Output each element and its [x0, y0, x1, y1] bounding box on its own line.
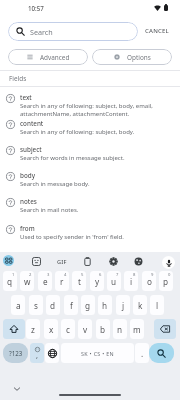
button[interactable]: c [61, 319, 75, 339]
staticText: body [20, 171, 35, 180]
button[interactable]: q [3, 271, 17, 291]
staticText: ?123 [9, 349, 23, 357]
button[interactable]: b [96, 319, 110, 339]
button[interactable]: e [38, 271, 52, 291]
staticText: GIF [57, 258, 67, 266]
button[interactable]: k [133, 295, 147, 315]
button[interactable]: l [150, 295, 164, 315]
button[interactable]: Space [61, 343, 134, 363]
button[interactable]: . [135, 343, 149, 363]
staticText: Search in message body. [20, 180, 90, 188]
staticText: w [24, 276, 31, 287]
button[interactable]: x [44, 319, 58, 339]
button[interactable]: u [107, 271, 121, 291]
staticText: e [43, 276, 48, 287]
button[interactable]: Options [92, 49, 172, 65]
staticText: o [147, 276, 152, 287]
staticText: f [70, 300, 73, 311]
staticText: 6 [99, 272, 102, 278]
staticText: u [111, 276, 117, 287]
button[interactable]: t [72, 271, 86, 291]
staticText: m [133, 324, 141, 335]
button[interactable]: GIF [53, 256, 71, 268]
staticText: 2 [29, 272, 32, 278]
button[interactable]: p [159, 271, 173, 291]
staticText: subject [20, 145, 42, 154]
staticText: y [95, 276, 100, 287]
button[interactable]: subject [0, 143, 180, 167]
staticText: x [49, 324, 54, 335]
button[interactable]: s [29, 295, 43, 315]
button[interactable]: content [0, 117, 180, 141]
staticText: , [36, 350, 39, 360]
button[interactable]: text [0, 91, 180, 118]
button[interactable]: z [26, 319, 40, 339]
button[interactable]: y [90, 271, 104, 291]
button[interactable]: Hide keyboard [11, 383, 23, 395]
button[interactable]: CANCEL [143, 25, 171, 37]
button[interactable]: j [116, 295, 130, 315]
staticText: j [122, 300, 125, 311]
staticText: c [66, 324, 70, 335]
staticText: 1 [12, 272, 15, 278]
staticText: d [50, 300, 56, 311]
button[interactable]: i [124, 271, 138, 291]
button[interactable]: o [142, 271, 156, 291]
button[interactable]: g [81, 295, 95, 315]
button[interactable]: Search [8, 22, 138, 41]
staticText: Search for words in message subject. [20, 154, 125, 162]
staticText: notes [20, 197, 37, 206]
staticText: SK • CS • EN [81, 350, 115, 357]
button[interactable]: Voice input [162, 256, 175, 269]
staticText: from [20, 224, 35, 233]
staticText: p [163, 276, 169, 287]
staticText: Search in any of following: subject, bod… [20, 128, 135, 136]
staticText: Search in mail notes. [20, 206, 79, 214]
button[interactable]: Emoji and comma [30, 343, 44, 363]
button[interactable]: v [78, 319, 92, 339]
staticText: v [83, 324, 88, 335]
staticText: h [102, 300, 108, 311]
staticText: z [31, 324, 35, 335]
button[interactable]: Shift [3, 319, 25, 339]
button[interactable]: Change language [45, 343, 59, 363]
staticText: 10:57 [28, 4, 44, 12]
staticText: CANCEL [145, 27, 169, 35]
staticText: q [7, 276, 13, 287]
button[interactable]: f [64, 295, 78, 315]
staticText: l [156, 300, 159, 311]
staticText: s [34, 300, 38, 311]
button[interactable]: h [98, 295, 112, 315]
staticText: Used to specify sender in 'from' field. [20, 233, 124, 241]
button[interactable]: Stickers [30, 255, 42, 267]
staticText: k [138, 300, 143, 311]
button[interactable]: Keyboard tools [3, 255, 14, 266]
button[interactable]: m [130, 319, 144, 339]
button[interactable]: notes [0, 195, 180, 219]
staticText: . [141, 348, 144, 359]
button[interactable]: Search [149, 343, 174, 363]
staticText: Options [127, 53, 151, 62]
button[interactable]: Settings [107, 255, 119, 267]
button[interactable]: n [113, 319, 127, 339]
staticText: a [16, 300, 21, 311]
button[interactable]: Clipboard [81, 255, 93, 267]
staticText: t [78, 276, 81, 287]
button[interactable]: Advanced [8, 49, 88, 65]
button[interactable]: from [0, 222, 180, 246]
staticText: i [130, 276, 133, 287]
staticText: 3 [47, 272, 50, 278]
button[interactable]: a [11, 295, 25, 315]
staticText: 8 [133, 272, 136, 278]
staticText: 7 [116, 272, 119, 278]
button[interactable]: ?123 [3, 343, 28, 363]
button[interactable]: body [0, 169, 180, 193]
button[interactable]: Themes [132, 255, 144, 267]
staticText: Search [30, 27, 53, 37]
button[interactable]: w [20, 271, 34, 291]
button[interactable]: d [46, 295, 60, 315]
staticText: 9 [151, 272, 154, 278]
staticText: Search in any of following: subject, bod… [20, 102, 153, 118]
button[interactable]: Backspace [154, 319, 176, 339]
button[interactable]: r [55, 271, 69, 291]
